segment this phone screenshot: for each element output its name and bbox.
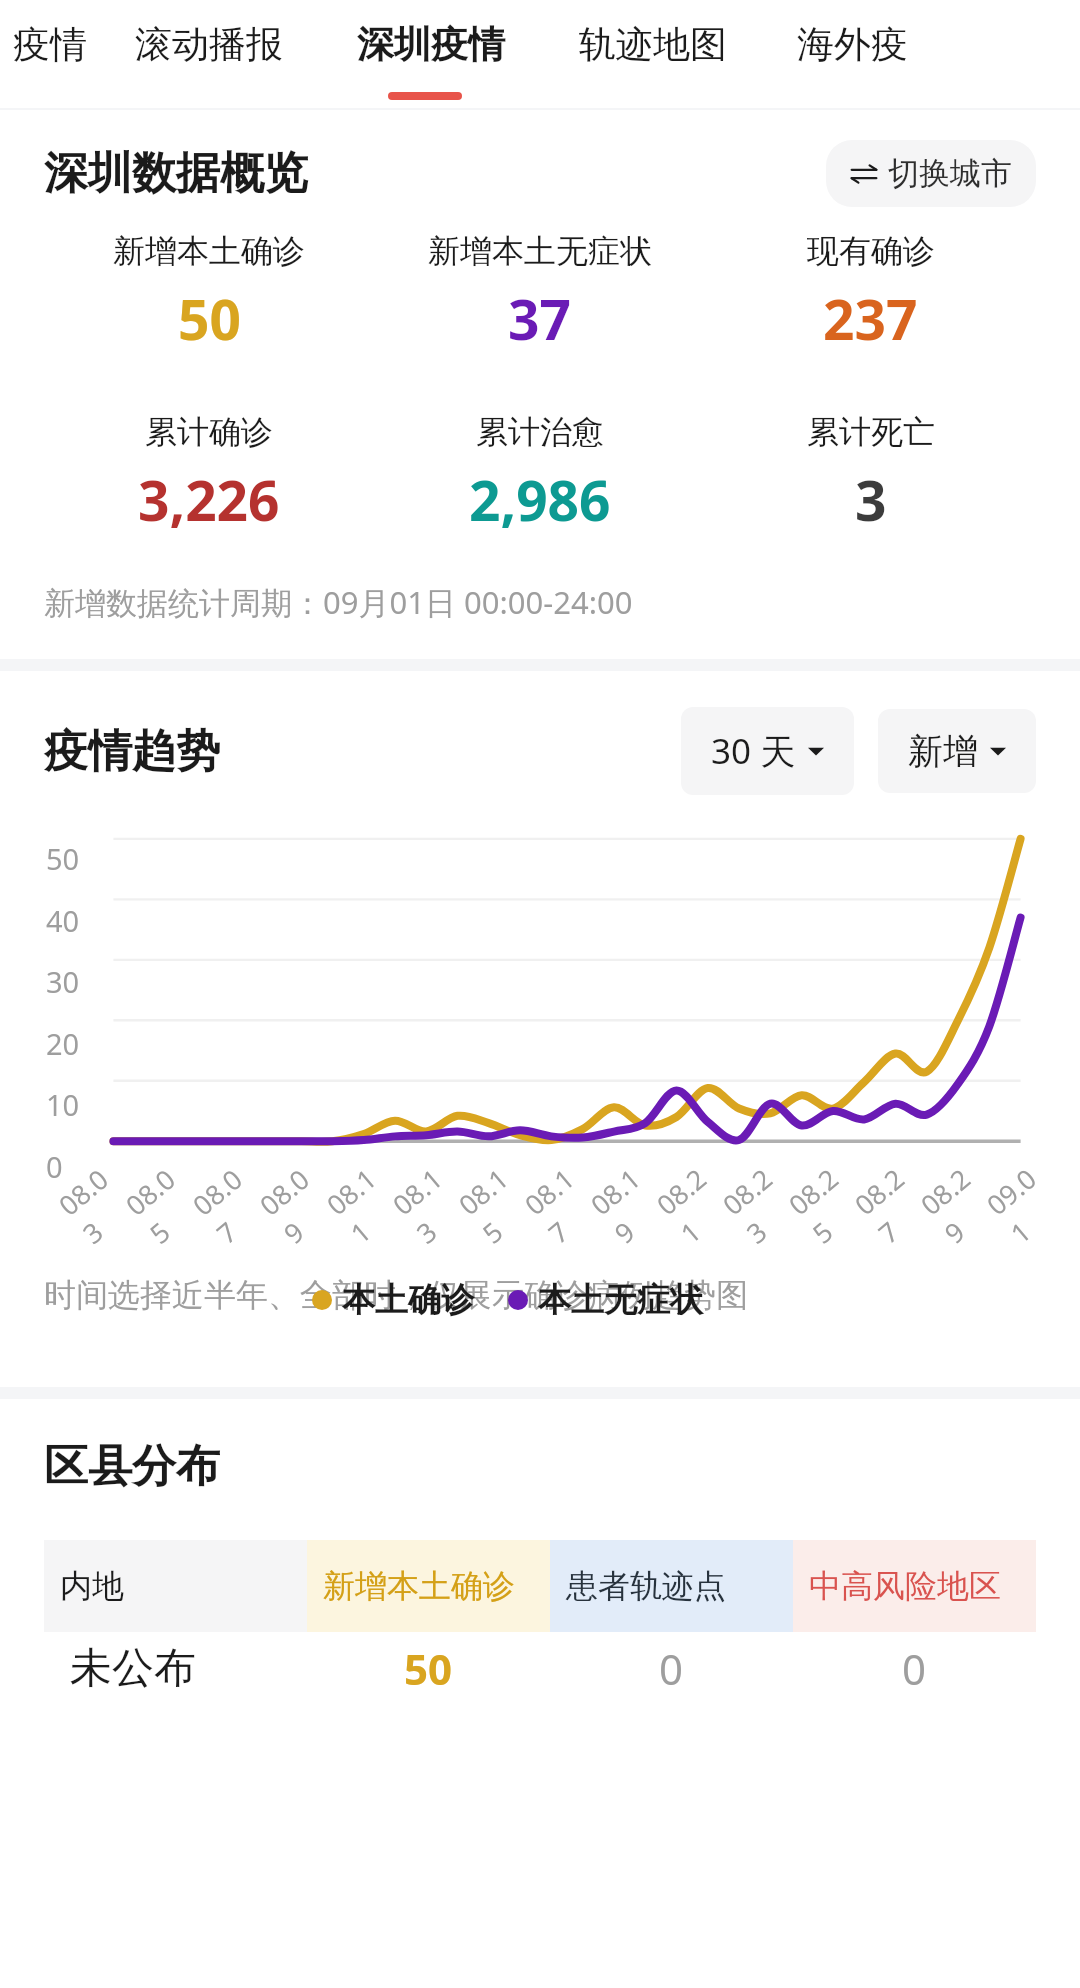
staticText: 未公布 bbox=[70, 1642, 196, 1695]
staticText: 09.01 bbox=[979, 1152, 1077, 1251]
staticText: 本土确诊 bbox=[342, 1279, 474, 1321]
button[interactable]: 中高风险地区 bbox=[793, 1540, 1036, 1632]
staticText: 10 bbox=[46, 1085, 80, 1124]
staticText: 疫情 bbox=[13, 21, 87, 68]
staticText: 切换城市 bbox=[888, 154, 1012, 193]
staticText: 0 bbox=[46, 1147, 63, 1186]
staticText: 本土无症状 bbox=[538, 1279, 703, 1321]
other: Switch city bbox=[850, 160, 878, 188]
staticText: 08.07 bbox=[185, 1152, 284, 1252]
button[interactable]: 疫情 bbox=[0, 0, 100, 88]
staticText: 50 bbox=[46, 839, 80, 878]
staticText: 08.11 bbox=[319, 1152, 417, 1251]
staticText: 新增本土确诊 bbox=[323, 1566, 515, 1606]
staticText: 新增本土无症状 bbox=[428, 231, 652, 271]
staticText: 3,226 bbox=[138, 462, 280, 537]
staticText: 0 bbox=[659, 1640, 684, 1697]
staticText: 2,986 bbox=[469, 462, 611, 537]
staticText: 37 bbox=[508, 281, 571, 356]
staticText: 疫情趋势 bbox=[44, 724, 220, 779]
staticText: 50 bbox=[404, 1640, 453, 1697]
staticText: 深圳疫情 bbox=[357, 21, 505, 68]
staticText: 237 bbox=[823, 281, 918, 356]
staticText: 累计治愈 bbox=[476, 412, 604, 452]
staticText: 时间选择近半年、全部时，仅展示确诊病例趋势图 bbox=[44, 1275, 917, 1315]
staticText: 20 bbox=[46, 1024, 80, 1063]
staticText: 累计确诊 bbox=[145, 412, 273, 452]
staticText: 40 bbox=[46, 901, 80, 940]
button[interactable]: 轨迹地图 bbox=[544, 0, 762, 88]
staticText: 08.23 bbox=[715, 1152, 813, 1251]
button[interactable]: 深圳疫情 bbox=[318, 0, 544, 88]
button[interactable]: 30 天 bbox=[681, 707, 854, 795]
staticText: 患者轨迹点 bbox=[566, 1566, 726, 1606]
staticText: 08.13 bbox=[385, 1152, 483, 1251]
staticText: 新增 bbox=[908, 729, 978, 773]
button[interactable]: 内地 bbox=[44, 1540, 307, 1632]
staticText: 区县分布 bbox=[44, 1439, 220, 1494]
staticText: 滚动播报 bbox=[135, 21, 283, 68]
staticText: 08.15 bbox=[451, 1152, 549, 1251]
staticText: 30 bbox=[46, 962, 80, 1001]
staticText: 中高风险地区 bbox=[809, 1566, 1001, 1606]
staticText: 08.19 bbox=[583, 1152, 681, 1251]
staticText: 50 bbox=[178, 281, 241, 356]
staticText: 08.21 bbox=[649, 1152, 747, 1251]
staticText: 内地 bbox=[60, 1566, 124, 1606]
staticText: 现有确诊 bbox=[807, 231, 935, 271]
staticText: 累计死亡 bbox=[807, 412, 935, 452]
staticText: 08.27 bbox=[847, 1152, 945, 1251]
staticText: 深圳数据概览 bbox=[44, 146, 308, 201]
staticText: 新增数据统计周期：09月01日 00:00-24:00 bbox=[44, 581, 633, 623]
button[interactable]: Switch city bbox=[826, 140, 1036, 207]
button[interactable]: 患者轨迹点 bbox=[550, 1540, 793, 1632]
staticText: 海外疫 bbox=[797, 21, 908, 68]
staticText: 30 天 bbox=[711, 727, 796, 775]
button[interactable]: 滚动播报 bbox=[100, 0, 318, 88]
staticText: 08.25 bbox=[781, 1152, 879, 1251]
button[interactable]: 新增本土确诊 bbox=[307, 1540, 550, 1632]
staticText: 3 bbox=[855, 462, 887, 537]
button[interactable]: 海外疫 bbox=[762, 0, 942, 88]
staticText: 08.17 bbox=[517, 1152, 615, 1251]
staticText: 新增本土确诊 bbox=[113, 231, 305, 271]
staticText: 0 bbox=[902, 1640, 927, 1697]
staticText: 08.29 bbox=[913, 1152, 1011, 1251]
staticText: 08.09 bbox=[252, 1152, 351, 1252]
staticText: 08.03 bbox=[51, 1152, 150, 1252]
staticText: 轨迹地图 bbox=[579, 21, 727, 68]
button[interactable]: 新增 bbox=[878, 709, 1036, 793]
staticText: 08.05 bbox=[118, 1152, 217, 1252]
